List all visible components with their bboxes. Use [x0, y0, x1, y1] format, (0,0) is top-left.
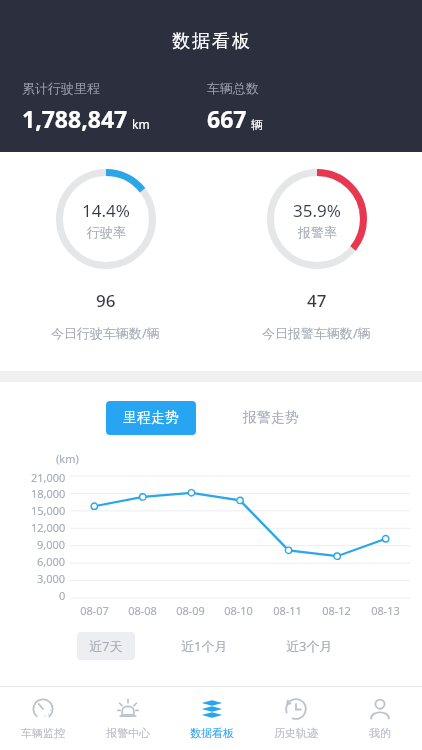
staticText: 08-09 [176, 603, 205, 618]
staticText: 近7天 [89, 637, 123, 655]
staticText: 辆 [251, 117, 263, 132]
staticText: 数据看板 [190, 726, 234, 740]
button[interactable]: 里程走势 [106, 401, 196, 435]
button[interactable]: 数据看板 [170, 687, 254, 750]
staticText: 报警率 [298, 224, 337, 240]
staticText: 08-12 [322, 603, 351, 618]
staticText: 6,000 [37, 554, 66, 568]
staticText: 08-13 [371, 603, 400, 618]
staticText: 08-07 [80, 603, 109, 618]
staticText: 35.9% [293, 199, 341, 222]
staticText: 15,000 [31, 503, 66, 517]
staticText: 近3个月 [286, 637, 333, 655]
button[interactable]: 14.4% [0, 153, 211, 342]
staticText: 0 [59, 588, 66, 602]
staticText: 报警走势 [243, 409, 299, 427]
staticText: 今日报警车辆数/辆 [262, 324, 371, 342]
staticText: 车辆监控 [21, 726, 65, 740]
staticText: 47 [307, 289, 327, 312]
staticText: 报警中心 [106, 726, 150, 740]
button[interactable]: 历史轨迹 [254, 687, 338, 750]
staticText: 12,000 [31, 520, 66, 534]
staticText: 08-08 [128, 603, 157, 618]
staticText: 18,000 [31, 486, 66, 500]
staticText: 数据看板 [171, 30, 251, 53]
button[interactable]: 近3个月 [274, 632, 345, 660]
staticText: 14.4% [82, 199, 130, 222]
staticText: 我的 [369, 726, 391, 740]
staticText: 累计行驶里程 [22, 80, 100, 96]
button[interactable]: 35.9% [211, 153, 422, 342]
staticText: (km) [56, 451, 79, 466]
staticText: 今日行驶车辆数/辆 [51, 324, 160, 342]
button[interactable]: 近1个月 [169, 632, 240, 660]
staticText: 08-11 [273, 603, 302, 618]
staticText: 1,788,847 [22, 103, 128, 134]
staticText: 21,000 [31, 470, 66, 484]
staticText: 667 [207, 103, 247, 134]
button[interactable]: 近7天 [77, 632, 135, 660]
button[interactable]: 车辆监控 [0, 687, 85, 750]
staticText: km [132, 116, 150, 132]
staticText: 96 [96, 289, 116, 312]
staticText: 历史轨迹 [274, 726, 318, 740]
button[interactable]: 我的 [338, 687, 422, 750]
button[interactable]: 报警走势 [226, 401, 316, 435]
button[interactable]: 报警中心 [85, 687, 170, 750]
staticText: 行驶率 [87, 224, 126, 240]
staticText: 近1个月 [181, 637, 228, 655]
staticText: 车辆总数 [207, 80, 259, 96]
staticText: 08-10 [224, 603, 253, 618]
staticText: 9,000 [37, 537, 66, 551]
staticText: 里程走势 [123, 409, 179, 427]
staticText: 3,000 [37, 571, 66, 585]
